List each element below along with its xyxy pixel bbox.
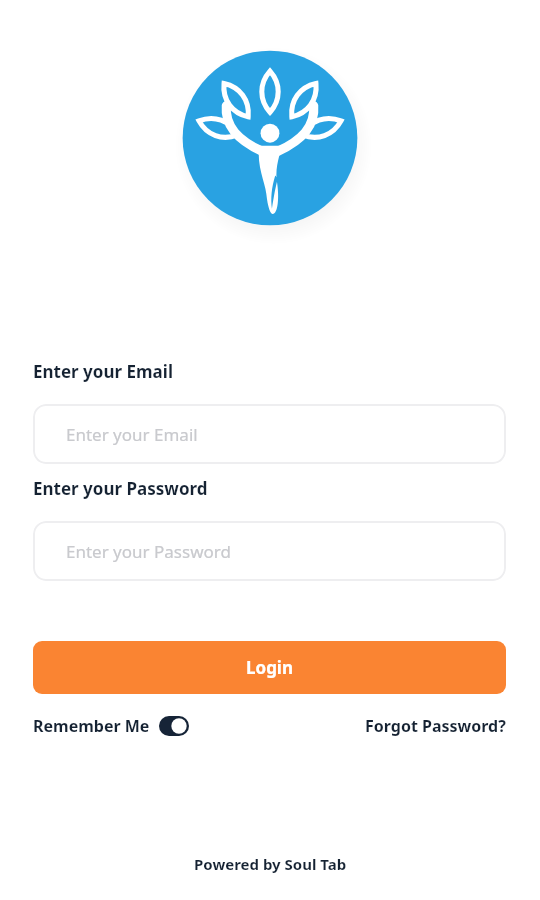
staticText: Remember Me <box>33 715 150 737</box>
staticText: Enter your Password <box>66 540 231 563</box>
staticText: Powered by Soul Tab <box>194 854 347 874</box>
staticText: Enter your Email <box>33 360 173 383</box>
staticText: Enter your Password <box>33 477 208 500</box>
button[interactable]: Forgot Password? <box>365 715 506 737</box>
staticText: Enter your Email <box>66 423 198 446</box>
button[interactable]: Enter your Email <box>33 404 506 464</box>
staticText: Forgot Password? <box>365 715 506 737</box>
button[interactable]: Login <box>33 641 506 694</box>
button[interactable]: Enter your Password <box>33 521 506 581</box>
staticText: Login <box>246 656 294 679</box>
other: Remember me toggle, on <box>159 716 189 736</box>
button[interactable]: Remember Me <box>33 715 189 737</box>
